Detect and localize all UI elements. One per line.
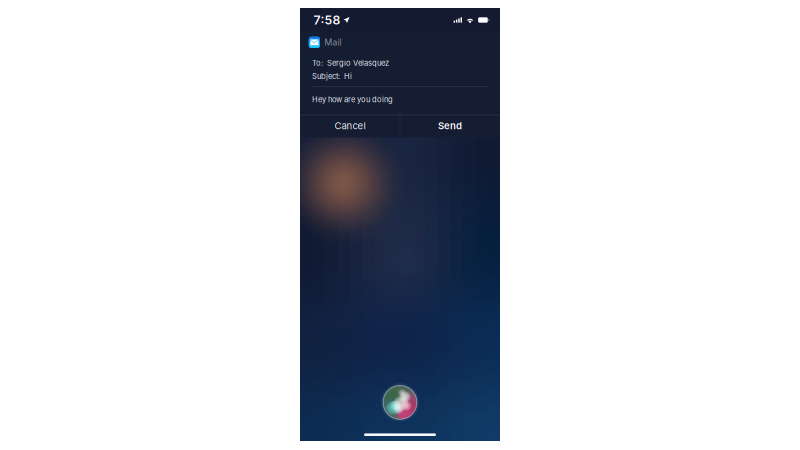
button[interactable]: Send xyxy=(400,115,500,137)
staticText: Send xyxy=(438,120,462,131)
staticText: Subject: Hi xyxy=(312,72,352,81)
staticText: Hey how are you doing xyxy=(312,95,393,104)
staticText: Cancel xyxy=(334,120,365,131)
staticText: To: Sergio Velasquez xyxy=(312,58,389,68)
button[interactable]: Cancel xyxy=(300,115,400,137)
staticText: Mail xyxy=(325,37,342,47)
staticText: 7:58 xyxy=(314,13,341,27)
